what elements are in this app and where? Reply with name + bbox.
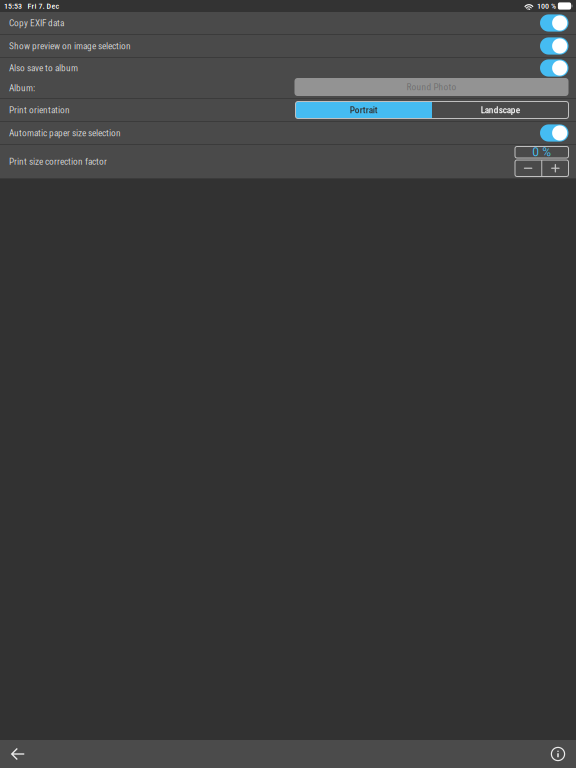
button[interactable]: Back [2,740,34,768]
staticText: Copy EXIF data [9,17,64,28]
staticText: 100 % [537,1,556,11]
staticText: Round Photo [406,81,456,92]
staticText: Show preview on image selection [9,40,131,51]
button[interactable]: Also save to album [0,58,576,78]
staticText: Landscape [481,104,520,115]
staticText: Print orientation [9,104,70,115]
staticText: Also save to album [9,62,78,73]
staticText: 15:53 [4,1,22,11]
staticText: Fri 7. Dec [27,1,59,11]
staticText: Portrait [350,104,378,115]
button[interactable]: Decrease [515,160,541,176]
button[interactable]: Portrait [295,101,432,118]
button[interactable]: Copy EXIF data [0,12,576,34]
button[interactable]: Increase [542,160,568,176]
staticText: Album: [9,82,35,93]
button[interactable]: Automatic paper size selection [0,122,576,144]
staticText: 0 % [532,145,551,159]
button[interactable]: Info [542,740,574,768]
button[interactable]: Landscape [432,101,568,118]
staticText: Automatic paper size selection [9,127,121,138]
staticText: Print size correction factor [9,156,107,167]
button[interactable]: Round Photo [294,79,568,97]
button[interactable]: Show preview on image selection [0,35,576,57]
